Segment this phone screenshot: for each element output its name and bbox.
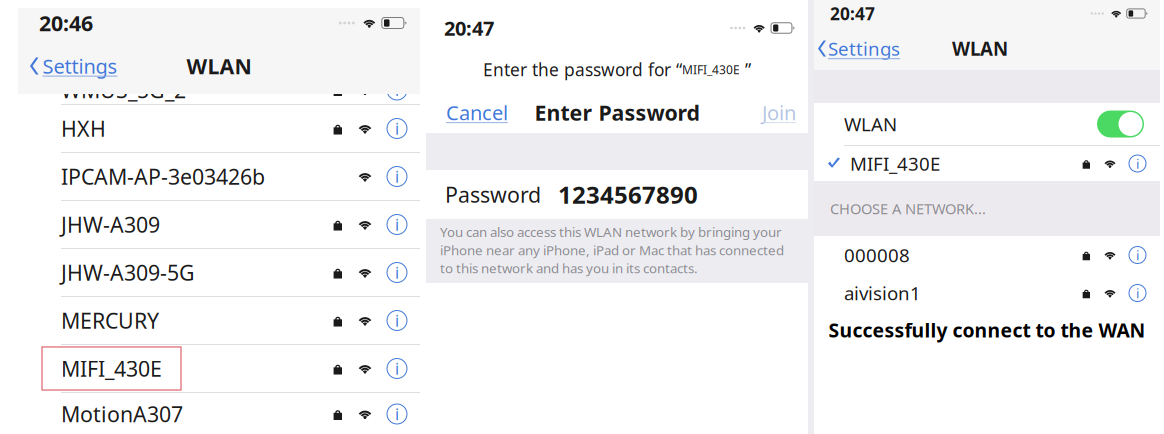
button[interactable]: Settings bbox=[18, 38, 121, 94]
staticText: Join bbox=[762, 99, 796, 126]
button[interactable]: MotionA307 bbox=[18, 393, 420, 434]
button[interactable]: MIFI_430E bbox=[18, 345, 420, 392]
button[interactable]: 000008 bbox=[814, 236, 1160, 274]
staticText: Enter Password bbox=[534, 98, 699, 127]
staticText: MIFI_430E bbox=[61, 354, 162, 383]
staticText: i bbox=[395, 262, 399, 283]
staticText: WLAN bbox=[952, 36, 1008, 61]
button[interactable]: Settings bbox=[814, 27, 904, 70]
staticText: Settings bbox=[42, 52, 117, 80]
button[interactable]: aivision1 bbox=[814, 274, 1160, 312]
staticText: Successfully connect to the WAN bbox=[828, 317, 1145, 343]
button[interactable]: MERCURY bbox=[18, 297, 420, 344]
staticText: Cancel bbox=[446, 99, 508, 126]
staticText: aivision1 bbox=[844, 280, 921, 306]
staticText: i bbox=[395, 79, 399, 101]
button[interactable]: IPCAM-AP-3e03426b bbox=[18, 153, 420, 200]
staticText: i bbox=[1136, 246, 1139, 264]
staticText: i bbox=[395, 214, 399, 235]
staticText: i bbox=[395, 118, 399, 139]
staticText: HXH bbox=[61, 114, 106, 143]
button[interactable]: JHW-A309-5G bbox=[18, 249, 420, 296]
staticText: MIFI_430E bbox=[682, 61, 740, 78]
button[interactable]: HXH bbox=[18, 105, 420, 152]
button[interactable]: JHW-A309 bbox=[18, 201, 420, 248]
staticText: i bbox=[1136, 284, 1139, 302]
staticText: i bbox=[395, 166, 399, 187]
staticText: WLAN bbox=[186, 51, 251, 81]
staticText: ” bbox=[740, 58, 751, 81]
staticText: MIFI_430E bbox=[850, 151, 940, 176]
button[interactable]: WLAN on bbox=[1097, 110, 1144, 137]
staticText: 20:47 bbox=[830, 2, 875, 25]
staticText: Enter the password for “ bbox=[483, 58, 682, 81]
button[interactable]: MIFI_430E bbox=[814, 146, 1160, 181]
staticText: WMUS_5G_2 bbox=[61, 75, 186, 105]
staticText: Settings bbox=[828, 36, 900, 61]
staticText: i bbox=[395, 403, 399, 425]
staticText: i bbox=[395, 358, 399, 379]
staticText: 000008 bbox=[844, 242, 910, 268]
button[interactable]: Cancel bbox=[426, 92, 518, 133]
staticText: 1234567890 bbox=[558, 178, 698, 211]
button[interactable]: Join bbox=[752, 92, 808, 133]
staticText: i bbox=[395, 310, 399, 331]
staticText: MERCURY bbox=[61, 306, 159, 335]
staticText: i bbox=[1136, 154, 1139, 173]
staticText: You can also access this WLAN network by… bbox=[440, 223, 784, 277]
staticText: CHOOSE A NETWORK... bbox=[830, 198, 986, 218]
staticText: WLAN bbox=[844, 111, 897, 137]
staticText: MotionA307 bbox=[61, 399, 183, 429]
staticText: 20:47 bbox=[444, 14, 494, 42]
staticText: JHW-A309-5G bbox=[61, 258, 195, 287]
staticText: JHW-A309 bbox=[61, 210, 160, 239]
staticText: Password bbox=[445, 180, 541, 209]
staticText: IPCAM-AP-3e03426b bbox=[61, 162, 265, 191]
staticText: 20:46 bbox=[39, 8, 93, 38]
